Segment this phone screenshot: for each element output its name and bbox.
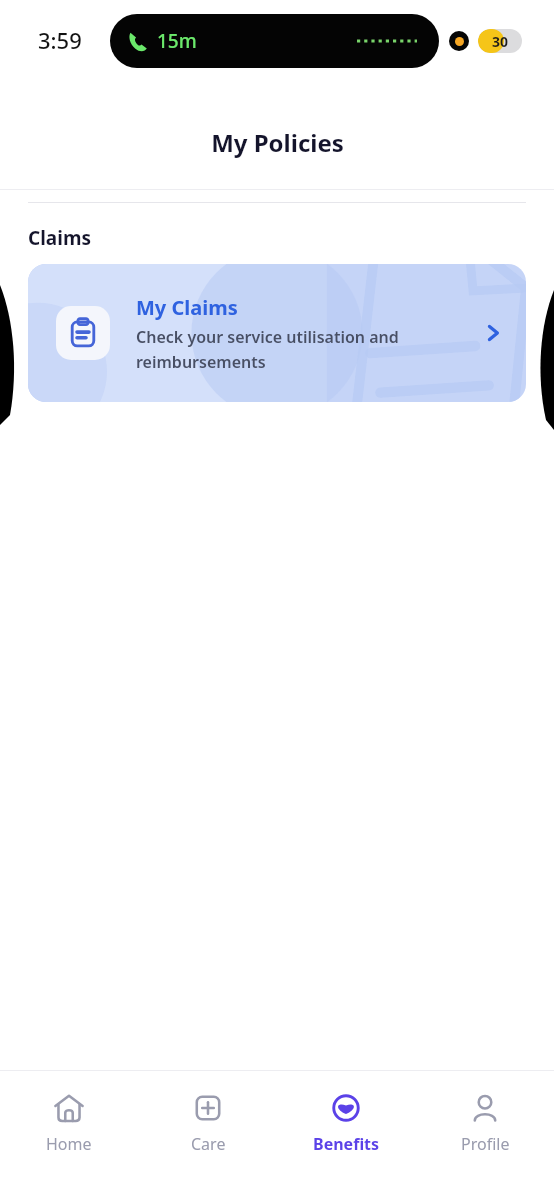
button[interactable]: Benefits (277, 1071, 415, 1155)
staticText: Check your service utilisation and reimb… (136, 326, 399, 372)
button[interactable]: Care (139, 1071, 277, 1155)
staticText: My Policies (211, 126, 344, 159)
staticText: Claims (28, 225, 91, 251)
staticText: 15m (157, 28, 197, 54)
staticText: Benefits (313, 1133, 380, 1155)
staticText: My Claims (136, 294, 238, 321)
staticText: 30 (492, 32, 509, 51)
staticText: Profile (461, 1133, 510, 1155)
button[interactable]: My Claims (28, 264, 526, 402)
button[interactable]: Home (0, 1071, 138, 1155)
staticText: 3:59 (38, 25, 82, 55)
staticText: Care (191, 1133, 226, 1155)
staticText: Home (46, 1133, 92, 1155)
button[interactable]: Profile (416, 1071, 554, 1155)
other: Open My Claims (482, 322, 504, 344)
